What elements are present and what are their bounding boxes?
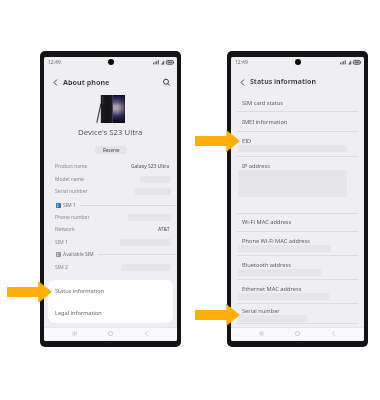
staticText: Status information	[55, 287, 105, 295]
staticText: Phone number	[55, 214, 90, 221]
staticText: 12:49	[48, 59, 61, 66]
button[interactable]: IMEI information	[231, 116, 364, 128]
button[interactable]: Serial number	[231, 305, 364, 324]
staticText: Available SIM	[63, 251, 94, 258]
staticText: SIM 2	[55, 264, 68, 271]
staticText: Serial number	[55, 188, 88, 195]
staticText: Product name	[55, 163, 88, 170]
staticText: Galaxy S23 Ultra	[131, 163, 170, 170]
button[interactable]: Phone Wi-Fi MAC address	[231, 235, 364, 254]
button[interactable]: Back	[141, 328, 152, 339]
staticText: Model name	[55, 176, 84, 183]
button[interactable]: Reserve	[95, 146, 127, 154]
staticText: Device's S23 Ultra	[78, 127, 143, 138]
button[interactable]: SIM card status	[231, 97, 364, 109]
staticText: Wi-Fi MAC address	[242, 218, 292, 226]
staticText: Ethernet MAC address	[242, 285, 302, 293]
button[interactable]: EID	[231, 135, 364, 154]
button[interactable]: Recents	[69, 328, 80, 339]
staticText: Bluetooth address	[242, 261, 291, 269]
staticText: IMEI information	[242, 118, 288, 126]
staticText: SIM 1	[63, 202, 76, 209]
button[interactable]: Network	[44, 223, 177, 235]
staticText: IP address	[242, 162, 270, 170]
button[interactable]: SIM 1	[44, 236, 177, 248]
button[interactable]: SIM 2	[44, 261, 177, 273]
button[interactable]: Home	[105, 328, 116, 339]
button[interactable]: Navigate up	[237, 77, 248, 88]
staticText: SIM card status	[242, 99, 284, 107]
staticText: 12:49	[235, 59, 248, 66]
staticText: Status information	[250, 77, 316, 87]
staticText: AT&T	[158, 226, 170, 233]
staticText: About phone	[63, 77, 110, 87]
button[interactable]: Phone number	[44, 211, 177, 223]
button[interactable]: Search	[161, 77, 172, 88]
button[interactable]: Recents	[256, 328, 267, 339]
button[interactable]: Navigate up	[50, 77, 61, 88]
button[interactable]: Wi-Fi MAC address	[231, 216, 364, 228]
staticText: Legal information	[55, 309, 102, 317]
staticText: EID	[242, 137, 252, 145]
staticText: Serial number	[242, 307, 280, 315]
button[interactable]: Bluetooth address	[231, 259, 364, 278]
staticText: SIM 1	[55, 239, 68, 246]
staticText: Network	[55, 226, 75, 233]
button[interactable]: Home	[292, 328, 303, 339]
button[interactable]: IP address	[231, 160, 364, 199]
staticText: Reserve	[103, 147, 120, 153]
staticText: Phone Wi-Fi MAC address	[242, 237, 310, 245]
button[interactable]: Model name	[44, 173, 177, 185]
button[interactable]: Status information	[48, 280, 173, 302]
button[interactable]: Product name	[44, 160, 177, 172]
button[interactable]: Ethernet MAC address	[231, 283, 364, 302]
button[interactable]: Legal information	[48, 302, 173, 323]
button[interactable]: Serial number	[44, 185, 177, 197]
button[interactable]: Back	[328, 328, 339, 339]
